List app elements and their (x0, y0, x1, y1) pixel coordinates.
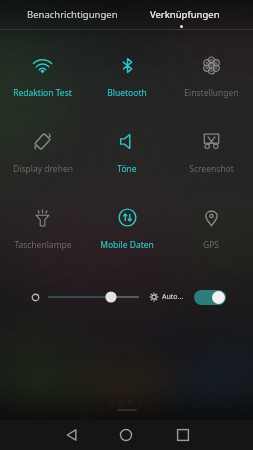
button[interactable]: Display drehen (0, 117, 85, 193)
button[interactable]: Taschenlampe (0, 193, 85, 269)
staticText: Töne (117, 163, 137, 175)
staticText: Auto... (162, 292, 184, 302)
staticText: Bluetooth (107, 87, 147, 99)
staticText: Screenshot (189, 163, 234, 175)
button[interactable]: Redaktion Test (0, 41, 85, 117)
button[interactable]: Brightness slider (43, 287, 144, 307)
staticText: Verknüpfungen (150, 8, 220, 21)
button[interactable]: Auto brightness toggle (194, 290, 226, 305)
button[interactable]: Recents (166, 420, 200, 450)
button[interactable]: Bluetooth (85, 41, 169, 117)
button[interactable]: GPS (169, 193, 253, 269)
button[interactable]: Einstellungen (169, 41, 253, 117)
staticText: GPS (203, 239, 219, 251)
staticText: Display drehen (13, 163, 73, 175)
button[interactable]: Home (109, 420, 143, 450)
button[interactable]: Auto... (149, 292, 184, 302)
button[interactable]: Benachrichtigungen (14, 0, 130, 29)
staticText: Mobile Daten (100, 239, 154, 251)
button[interactable]: Mobile Daten (85, 193, 169, 269)
staticText: Redaktion Test (13, 87, 72, 99)
button[interactable]: Töne (85, 117, 169, 193)
button[interactable]: Low brightness (26, 288, 44, 306)
staticText: Einstellungen (184, 87, 239, 99)
button[interactable]: Back (55, 420, 89, 450)
staticText: Taschenlampe (14, 239, 72, 251)
button[interactable]: Verknüpfungen (140, 0, 230, 29)
button[interactable]: Screenshot (169, 117, 253, 193)
staticText: Benachrichtigungen (27, 8, 118, 21)
